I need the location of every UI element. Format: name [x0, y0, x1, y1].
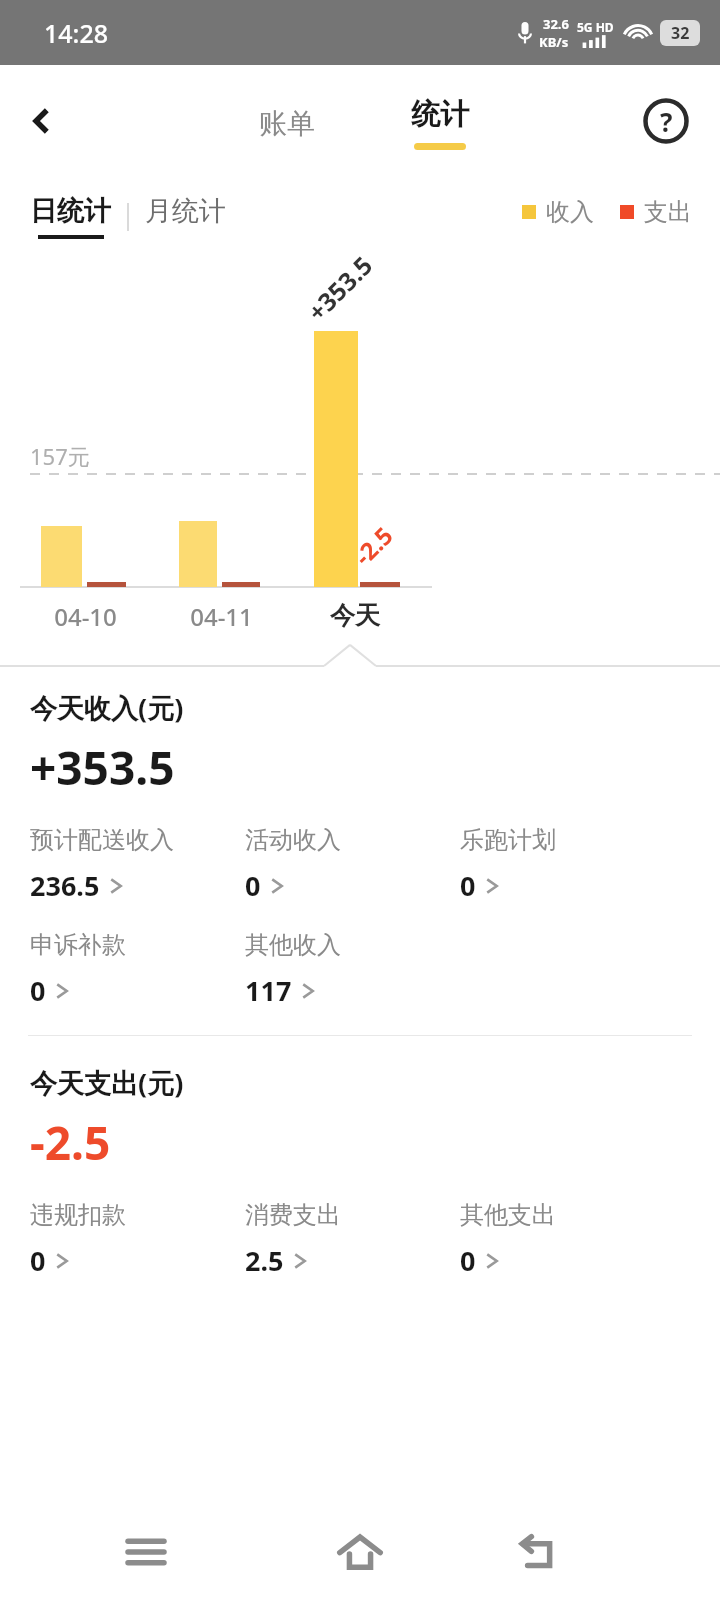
button[interactable]: Recent apps	[110, 1516, 182, 1588]
staticText: -2.5	[30, 1111, 111, 1174]
staticText: 支出	[644, 197, 692, 227]
button[interactable]: Back	[503, 1516, 575, 1588]
button[interactable]: 账单	[233, 98, 341, 149]
staticText: 32.6	[543, 15, 569, 33]
staticText: 今天收入(元)	[30, 689, 184, 726]
staticText: 今天支出(元)	[30, 1064, 184, 1101]
staticText: 04-11	[190, 600, 253, 633]
staticText: 0	[460, 1242, 476, 1279]
button[interactable]: 违规扣款	[30, 1200, 245, 1279]
button[interactable]: 预计配送收入	[30, 825, 245, 904]
button[interactable]: 其他收入	[245, 930, 460, 1009]
staticText: 活动收入	[245, 825, 341, 855]
staticText: 14:28	[44, 16, 109, 50]
staticText: 2.5	[245, 1242, 284, 1279]
staticText: 0	[30, 1242, 46, 1279]
staticText: 月统计	[145, 194, 226, 228]
staticText: 32	[671, 22, 690, 44]
staticText: 其他支出	[460, 1200, 556, 1230]
staticText: 今天	[330, 600, 380, 631]
button[interactable]: 其他支出	[460, 1200, 660, 1279]
staticText: 0	[245, 867, 261, 904]
staticText: 5G HD	[577, 19, 614, 35]
staticText: +353.5	[30, 736, 175, 799]
staticText: 157元	[30, 441, 90, 471]
button[interactable]: 日统计	[30, 194, 111, 239]
button[interactable]: 统计	[393, 92, 487, 154]
button[interactable]: Help	[638, 93, 694, 149]
staticText: 日统计	[30, 194, 111, 228]
staticText: 统计	[411, 96, 469, 133]
staticText: 117	[245, 972, 292, 1009]
staticText: -2.5	[346, 519, 399, 572]
button[interactable]: 活动收入	[245, 825, 460, 904]
staticText: ?	[660, 104, 673, 139]
staticText: 其他收入	[245, 930, 341, 960]
button[interactable]: 月统计	[145, 200, 226, 234]
staticText: 0	[460, 867, 476, 904]
button[interactable]: Back	[14, 93, 70, 149]
staticText: 236.5	[30, 867, 100, 904]
staticText: 违规扣款	[30, 1200, 126, 1230]
button[interactable]: 消费支出	[245, 1200, 460, 1279]
staticText: KB/s	[539, 33, 569, 51]
staticText: 消费支出	[245, 1200, 341, 1230]
staticText: 申诉补款	[30, 930, 126, 960]
staticText: 收入	[546, 197, 594, 227]
button[interactable]: Home	[324, 1516, 396, 1588]
staticText: 乐跑计划	[460, 825, 556, 855]
staticText: 账单	[259, 106, 315, 141]
staticText: 0	[30, 972, 46, 1009]
button[interactable]: 申诉补款	[30, 930, 245, 1009]
staticText: +353.5	[299, 248, 379, 328]
staticText: 04-10	[54, 600, 117, 633]
staticText: 预计配送收入	[30, 825, 174, 855]
button[interactable]: 乐跑计划	[460, 825, 660, 904]
